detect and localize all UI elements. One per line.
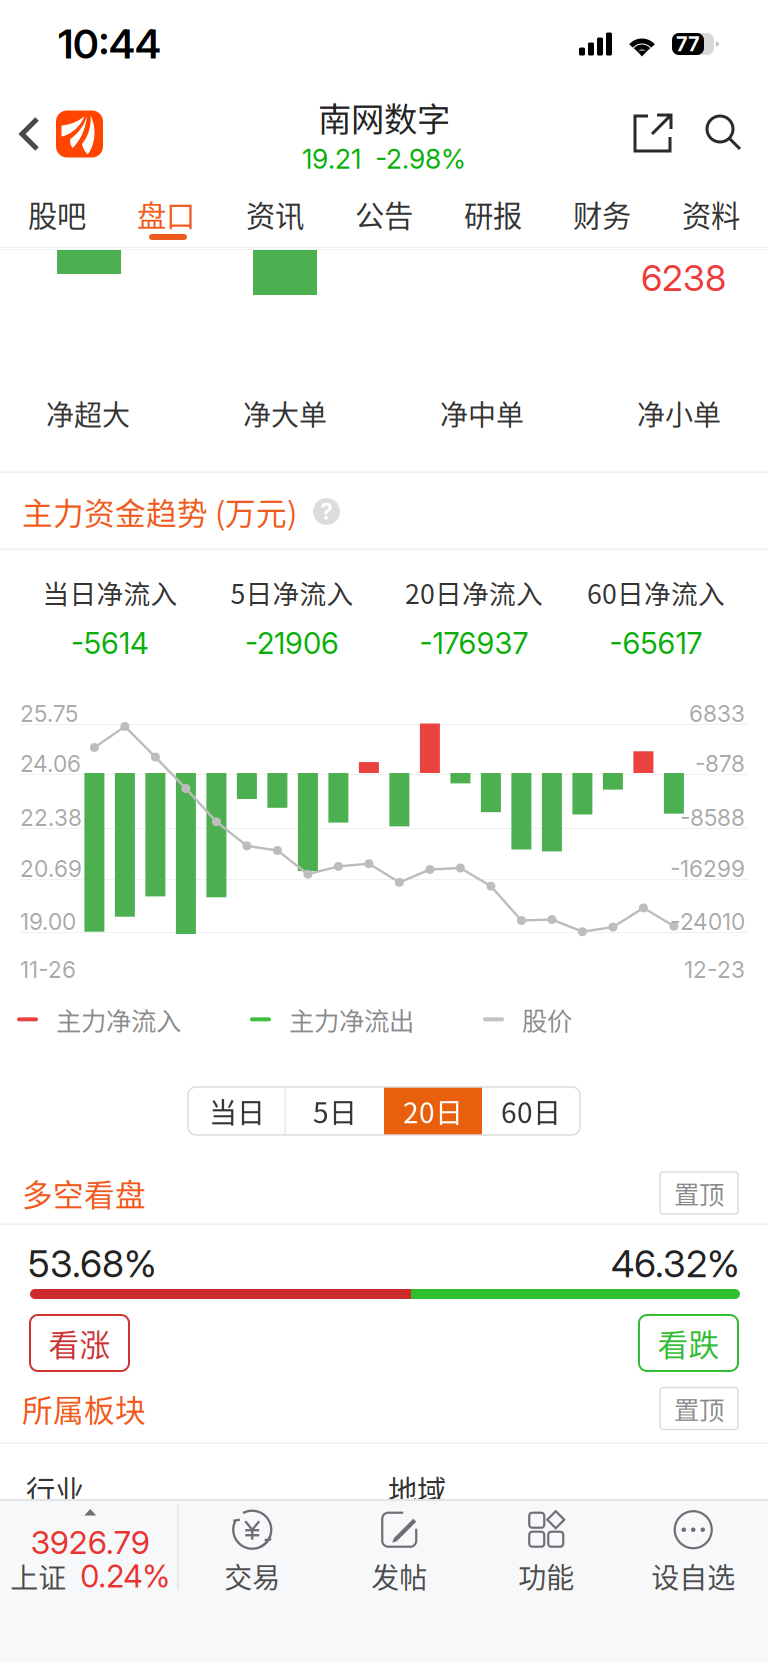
staticText: 0.24% — [80, 1558, 170, 1595]
staticText: 46.32% — [611, 1241, 740, 1286]
staticText: 主力净流出 — [289, 1001, 414, 1038]
staticText: 当日 — [209, 1091, 265, 1131]
button[interactable]: 当日 — [188, 1087, 286, 1135]
button[interactable]: 研报 — [438, 182, 547, 246]
staticText: 多空看盘 — [22, 1171, 146, 1215]
button[interactable]: 3926.79 — [1, 1499, 177, 1595]
staticText: 10:44 — [58, 20, 161, 68]
button[interactable]: 交易 — [179, 1499, 326, 1595]
staticText: 5日 — [313, 1091, 357, 1131]
staticText: 发帖 — [371, 1556, 427, 1596]
button[interactable]: 资讯 — [220, 182, 329, 246]
staticText: 行业 — [26, 1468, 84, 1510]
staticText: 看跌 — [657, 1321, 719, 1365]
button[interactable]: App icon — [56, 110, 103, 157]
button[interactable]: 设自选 — [620, 1499, 767, 1595]
staticText: 资讯 — [246, 193, 304, 235]
staticText: 功能 — [518, 1556, 574, 1596]
button[interactable]: 看涨 — [30, 1315, 129, 1371]
staticText: 净小单 — [637, 393, 721, 433]
staticText: 交易 — [224, 1556, 280, 1596]
staticText: -21906 — [245, 626, 339, 661]
staticText: 地域 — [388, 1468, 446, 1510]
staticText: 研报 — [464, 193, 522, 235]
staticText: 资料 — [682, 193, 740, 235]
button[interactable]: 资料 — [656, 182, 765, 246]
button[interactable]: 置顶 — [660, 1387, 738, 1429]
button[interactable]: 5日 — [286, 1087, 384, 1135]
staticText: 公告 — [355, 193, 413, 235]
staticText: -65617 — [609, 626, 702, 661]
staticText: 净大单 — [243, 393, 327, 433]
button[interactable]: Search — [688, 88, 768, 180]
staticText: -8588 — [680, 804, 745, 831]
staticText: 南网数字 — [318, 93, 450, 141]
button[interactable]: 盘口 — [111, 182, 220, 246]
staticText: 股价 — [522, 1001, 572, 1038]
staticText: 12-23 — [684, 956, 745, 983]
button[interactable]: 60日 — [482, 1087, 580, 1135]
staticText: 上证 — [10, 1556, 66, 1596]
button[interactable]: 20日 — [384, 1087, 482, 1135]
staticText: 20日净流入 — [405, 573, 543, 612]
staticText: -16299 — [670, 855, 745, 882]
staticText: 19.21 — [302, 143, 361, 175]
staticText: ? — [320, 498, 333, 525]
staticText: 22.38 — [20, 804, 82, 831]
button[interactable]: 功能 — [473, 1499, 620, 1595]
staticText: -5614 — [71, 626, 149, 661]
staticText: 置顶 — [674, 1390, 724, 1427]
button[interactable]: 置顶 — [660, 1172, 738, 1214]
staticText: -176937 — [419, 626, 528, 661]
staticText: 24.06 — [20, 750, 81, 777]
staticText: 60日净流入 — [587, 573, 725, 612]
staticText: 6238 — [641, 256, 726, 300]
button[interactable]: Share — [618, 88, 688, 180]
staticText: 当日净流入 — [42, 573, 177, 612]
staticText: 所属板块 — [22, 1386, 146, 1431]
button[interactable]: Back — [0, 88, 56, 180]
button[interactable]: 公告 — [329, 182, 438, 246]
staticText: -878 — [695, 750, 745, 777]
staticText: 20.69 — [20, 855, 82, 882]
staticText: -24010 — [670, 908, 745, 935]
staticText: 3926.79 — [31, 1523, 150, 1562]
staticText: 主力净流入 — [56, 1001, 181, 1038]
staticText: 净中单 — [440, 393, 524, 433]
button[interactable]: 看跌 — [639, 1315, 738, 1371]
staticText: 主力资金趋势 (万元) — [22, 489, 297, 534]
staticText: 置顶 — [674, 1175, 724, 1211]
staticText: 净超大 — [46, 393, 130, 433]
staticText: -2.98% — [375, 143, 466, 175]
staticText: 11-26 — [20, 956, 76, 983]
button[interactable]: 财务 — [547, 182, 656, 246]
button[interactable]: 发帖 — [326, 1499, 473, 1595]
staticText: 设自选 — [651, 1556, 735, 1596]
staticText: 19.00 — [20, 908, 76, 935]
staticText: 60日 — [501, 1091, 561, 1131]
staticText: 盘口 — [137, 193, 195, 235]
staticText: 25.75 — [20, 700, 78, 727]
staticText: 20日 — [403, 1091, 463, 1131]
staticText: 77 — [676, 32, 700, 56]
staticText: 看涨 — [48, 1321, 110, 1365]
button[interactable]: 股吧 — [2, 182, 111, 246]
staticText: 财务 — [573, 193, 631, 235]
staticText: 5日净流入 — [230, 573, 353, 612]
staticText: 53.68% — [28, 1241, 157, 1286]
staticText: 股吧 — [28, 193, 86, 235]
staticText: 6833 — [689, 700, 745, 727]
